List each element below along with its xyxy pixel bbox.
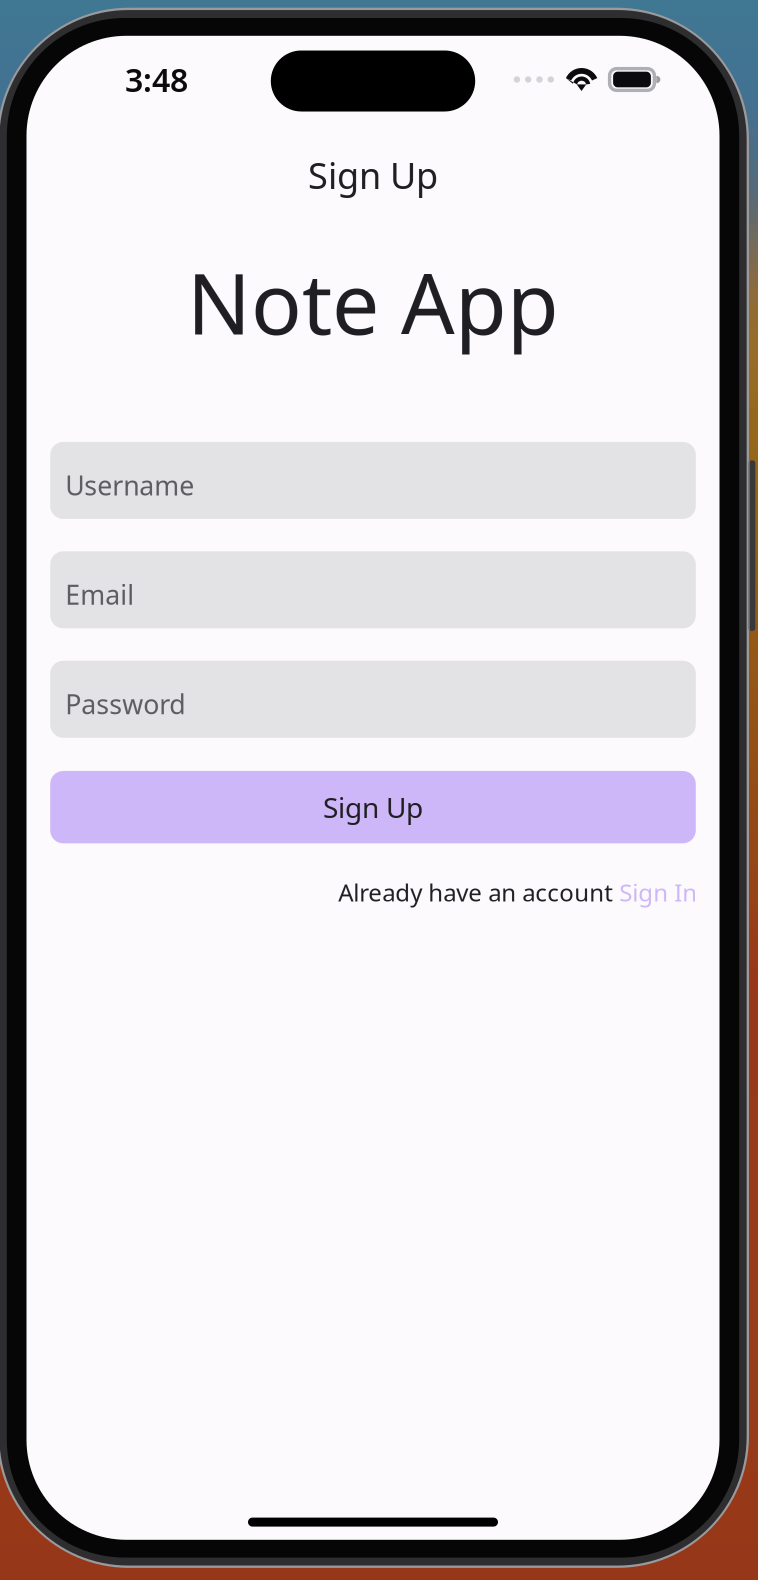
button[interactable]: Sign In: [619, 876, 697, 908]
staticText: Note App: [187, 246, 559, 358]
staticText: Sign Up: [323, 789, 423, 826]
staticText: Sign In: [619, 876, 697, 908]
staticText: Email: [65, 577, 134, 612]
button[interactable]: Sign Up: [50, 771, 696, 843]
staticText: 3:48: [125, 58, 188, 101]
staticText: Already have an account: [338, 876, 619, 908]
staticText: Sign Up: [308, 151, 438, 199]
staticText: Username: [65, 467, 194, 503]
staticText: Password: [65, 686, 185, 721]
